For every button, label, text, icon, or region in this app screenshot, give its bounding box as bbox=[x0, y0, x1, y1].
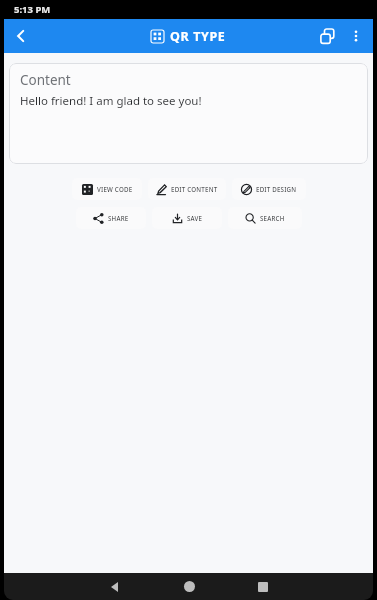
button[interactable]: EDIT DESIGN bbox=[232, 178, 306, 200]
button[interactable]: SEARCH bbox=[228, 207, 302, 229]
staticText: Hello friend! I am glad to see you! bbox=[20, 93, 202, 109]
staticText: EDIT DESIGN bbox=[256, 185, 297, 193]
button[interactable]: SHARE bbox=[76, 207, 146, 229]
staticText: SEARCH bbox=[260, 214, 285, 222]
staticText: QR TYPE bbox=[170, 28, 226, 45]
button[interactable]: Back bbox=[97, 573, 133, 600]
button[interactable]: Recent apps bbox=[245, 573, 281, 600]
button[interactable]: EDIT CONTENT bbox=[148, 178, 226, 200]
button[interactable]: Content bbox=[9, 63, 368, 164]
button[interactable]: SAVE bbox=[152, 207, 222, 229]
staticText: Content bbox=[20, 71, 71, 89]
staticText: SAVE bbox=[187, 214, 203, 222]
staticText: 5:13 PM bbox=[14, 3, 51, 16]
staticText: SHARE bbox=[108, 214, 129, 222]
staticText: EDIT CONTENT bbox=[171, 185, 218, 193]
button[interactable]: Home bbox=[171, 573, 207, 600]
button[interactable]: Back bbox=[4, 19, 38, 53]
button[interactable]: More options bbox=[343, 23, 369, 49]
button[interactable]: Duplicate bbox=[311, 20, 343, 52]
staticText: VIEW CODE bbox=[97, 185, 133, 193]
button[interactable]: VIEW CODE bbox=[72, 178, 142, 200]
